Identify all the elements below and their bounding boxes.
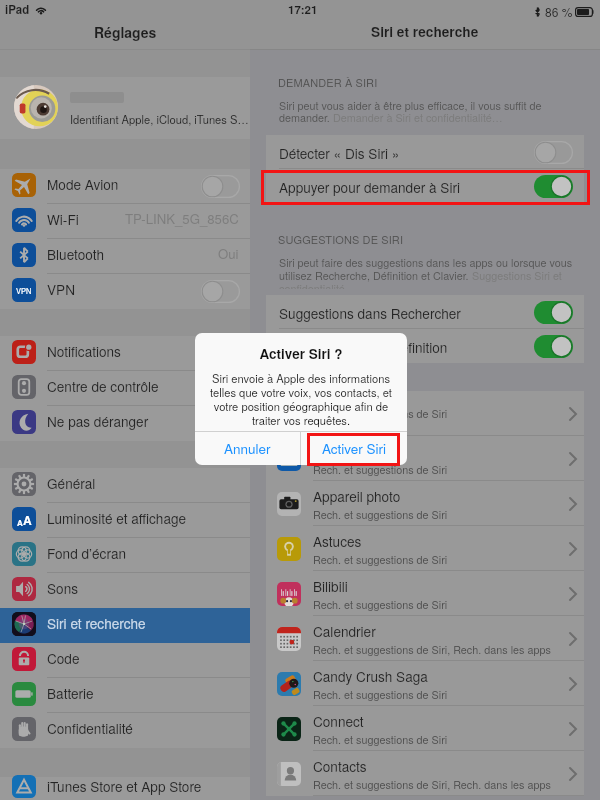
staticText: iPad [5, 1, 30, 17]
staticText: Identifiant Apple, iCloud, iTunes S… [70, 111, 249, 127]
staticText: Rech. et suggestions de Siri [313, 597, 448, 612]
button[interactable]: Fond d’écran [0, 538, 250, 573]
staticText: Calendrier [313, 621, 376, 640]
button[interactable]: Désactivé [201, 280, 240, 303]
staticText: Bilibili [313, 576, 348, 595]
staticText: Ne pas déranger [47, 411, 149, 430]
staticText: Rech. et suggestions de Siri, Rech. dans… [313, 777, 551, 792]
button[interactable]: Candy Crush Saga [266, 661, 584, 706]
button[interactable]: Connect [266, 706, 584, 751]
staticText: Demander à Siri et confidentialité… [333, 110, 503, 125]
button[interactable]: iTunes Store et App Store [0, 777, 250, 800]
staticText: App Store [313, 441, 374, 460]
staticText: Astuces [313, 531, 362, 550]
button[interactable]: Activer Siri [301, 432, 407, 465]
button[interactable]: Notifications [0, 336, 250, 371]
button[interactable]: Activé [534, 335, 573, 358]
staticText: Rech. et suggestions de Siri [313, 552, 448, 567]
button[interactable]: Wi-Fi [0, 204, 250, 239]
staticText: Siri et recherche [371, 22, 479, 42]
button[interactable]: Général [0, 468, 250, 503]
button[interactable]: Astuces [266, 526, 584, 571]
button[interactable]: A [0, 503, 250, 538]
button[interactable]: Centre de contrôle [0, 371, 250, 406]
button[interactable]: Bluetooth [0, 239, 250, 274]
staticText: Suggestions dans Définition [279, 337, 448, 356]
button[interactable]: Suggestions dans Définition [266, 329, 584, 363]
staticText: Siri et recherche [47, 613, 146, 632]
button[interactable]: Activé [534, 301, 573, 324]
staticText: Candy Crush Saga [313, 666, 428, 685]
staticText: Suggestions Siri et [472, 268, 562, 283]
button[interactable]: Annuler [195, 432, 300, 465]
button[interactable]: Désactivé [534, 141, 573, 164]
other: Ouvrir [569, 452, 577, 466]
staticText: Général [47, 473, 96, 492]
button[interactable]: Batterie [0, 678, 250, 713]
other: Ouvrir [569, 542, 577, 556]
button[interactable]: Mode Avion [0, 169, 250, 204]
staticText: Activer Siri [322, 439, 387, 458]
button[interactable]: VPN [0, 274, 250, 309]
staticText: Batterie [47, 683, 94, 702]
button[interactable]: Siri et recherche [0, 608, 250, 643]
button[interactable]: Bilibili [266, 571, 584, 616]
staticText: confidentialité… [279, 281, 356, 289]
staticText: A [17, 517, 23, 528]
staticText: A [23, 511, 32, 528]
staticText: Rech. et suggestions de Siri, Rech. dans… [313, 642, 551, 657]
button[interactable]: Calendrier [266, 616, 584, 661]
staticText: Annuler [224, 439, 271, 458]
staticText: Appuyer pour demander à Siri [279, 177, 460, 196]
staticText: Rech. et suggestions de Siri [313, 687, 448, 702]
staticText: Rech. et suggestions de Siri [313, 732, 448, 747]
other: Ouvrir [569, 407, 577, 421]
staticText: Réglages [94, 22, 157, 42]
staticText: Détecter « Dis Siri » [279, 143, 400, 162]
staticText: Siri peut vous aider à être plus efficac… [279, 98, 542, 113]
staticText: Mode Avion [47, 174, 119, 193]
staticText: Contacts [313, 756, 367, 775]
staticText: VPN [16, 285, 32, 296]
button[interactable]: Appareil photo [266, 481, 584, 526]
staticText: TP-LINK_5G_856C [125, 209, 239, 228]
button[interactable]: Appuyer pour demander à Siri [266, 169, 584, 203]
staticText: Rech. et suggestions de Siri [313, 462, 448, 477]
staticText: Bluetooth [47, 244, 104, 263]
staticText: Siri peut faire des suggestions dans les… [279, 255, 573, 270]
button[interactable]: Détecter « Dis Siri » [266, 135, 584, 169]
staticText: Notifications [47, 341, 121, 360]
staticText: Luminosité et affichage [47, 508, 187, 527]
staticText: Rech. et suggestions de Siri [313, 406, 448, 421]
staticText: demander. [279, 110, 333, 125]
staticText: Rech. et suggestions de Siri [313, 507, 448, 522]
other: Ouvrir [569, 497, 577, 511]
other: Ouvrir [569, 632, 577, 646]
button[interactable]: Ne pas déranger [0, 406, 250, 441]
button[interactable]: Suggestions dans Rechercher [266, 295, 584, 329]
staticText: SUGGESTIONS DE SIRI [278, 231, 404, 247]
button[interactable]: Confidentialité [0, 713, 250, 748]
button[interactable]: Code [0, 643, 250, 678]
button[interactable]: Activé [534, 175, 573, 198]
button[interactable]: App Store [266, 436, 584, 481]
other: Ouvrir [569, 677, 577, 691]
staticText: Siri envoie à Apple des informations tel… [204, 370, 398, 428]
staticText: 17:21 [288, 1, 318, 17]
staticText: Appareil photo [313, 486, 401, 505]
button[interactable]: Contacts [266, 751, 584, 796]
staticText: Fond d’écran [47, 543, 126, 562]
staticText: VPN [47, 279, 75, 298]
staticText: Confidentialité [47, 718, 133, 737]
staticText: iTunes Store et App Store [47, 776, 202, 795]
staticText: Suggestions dans Rechercher [279, 303, 461, 322]
other: Ouvrir [569, 722, 577, 736]
button[interactable]: Sons [0, 573, 250, 608]
button[interactable]: Rech. et suggestions de Siri [266, 391, 584, 436]
button[interactable]: Identifiant Apple, iCloud, iTunes S… [0, 77, 250, 139]
staticText: DEMANDER À SIRI [278, 74, 378, 90]
staticText: Code [47, 648, 80, 667]
button[interactable]: Désactivé [201, 175, 240, 198]
staticText: Activer Siri ? [195, 344, 407, 363]
staticText: Sons [47, 578, 78, 597]
